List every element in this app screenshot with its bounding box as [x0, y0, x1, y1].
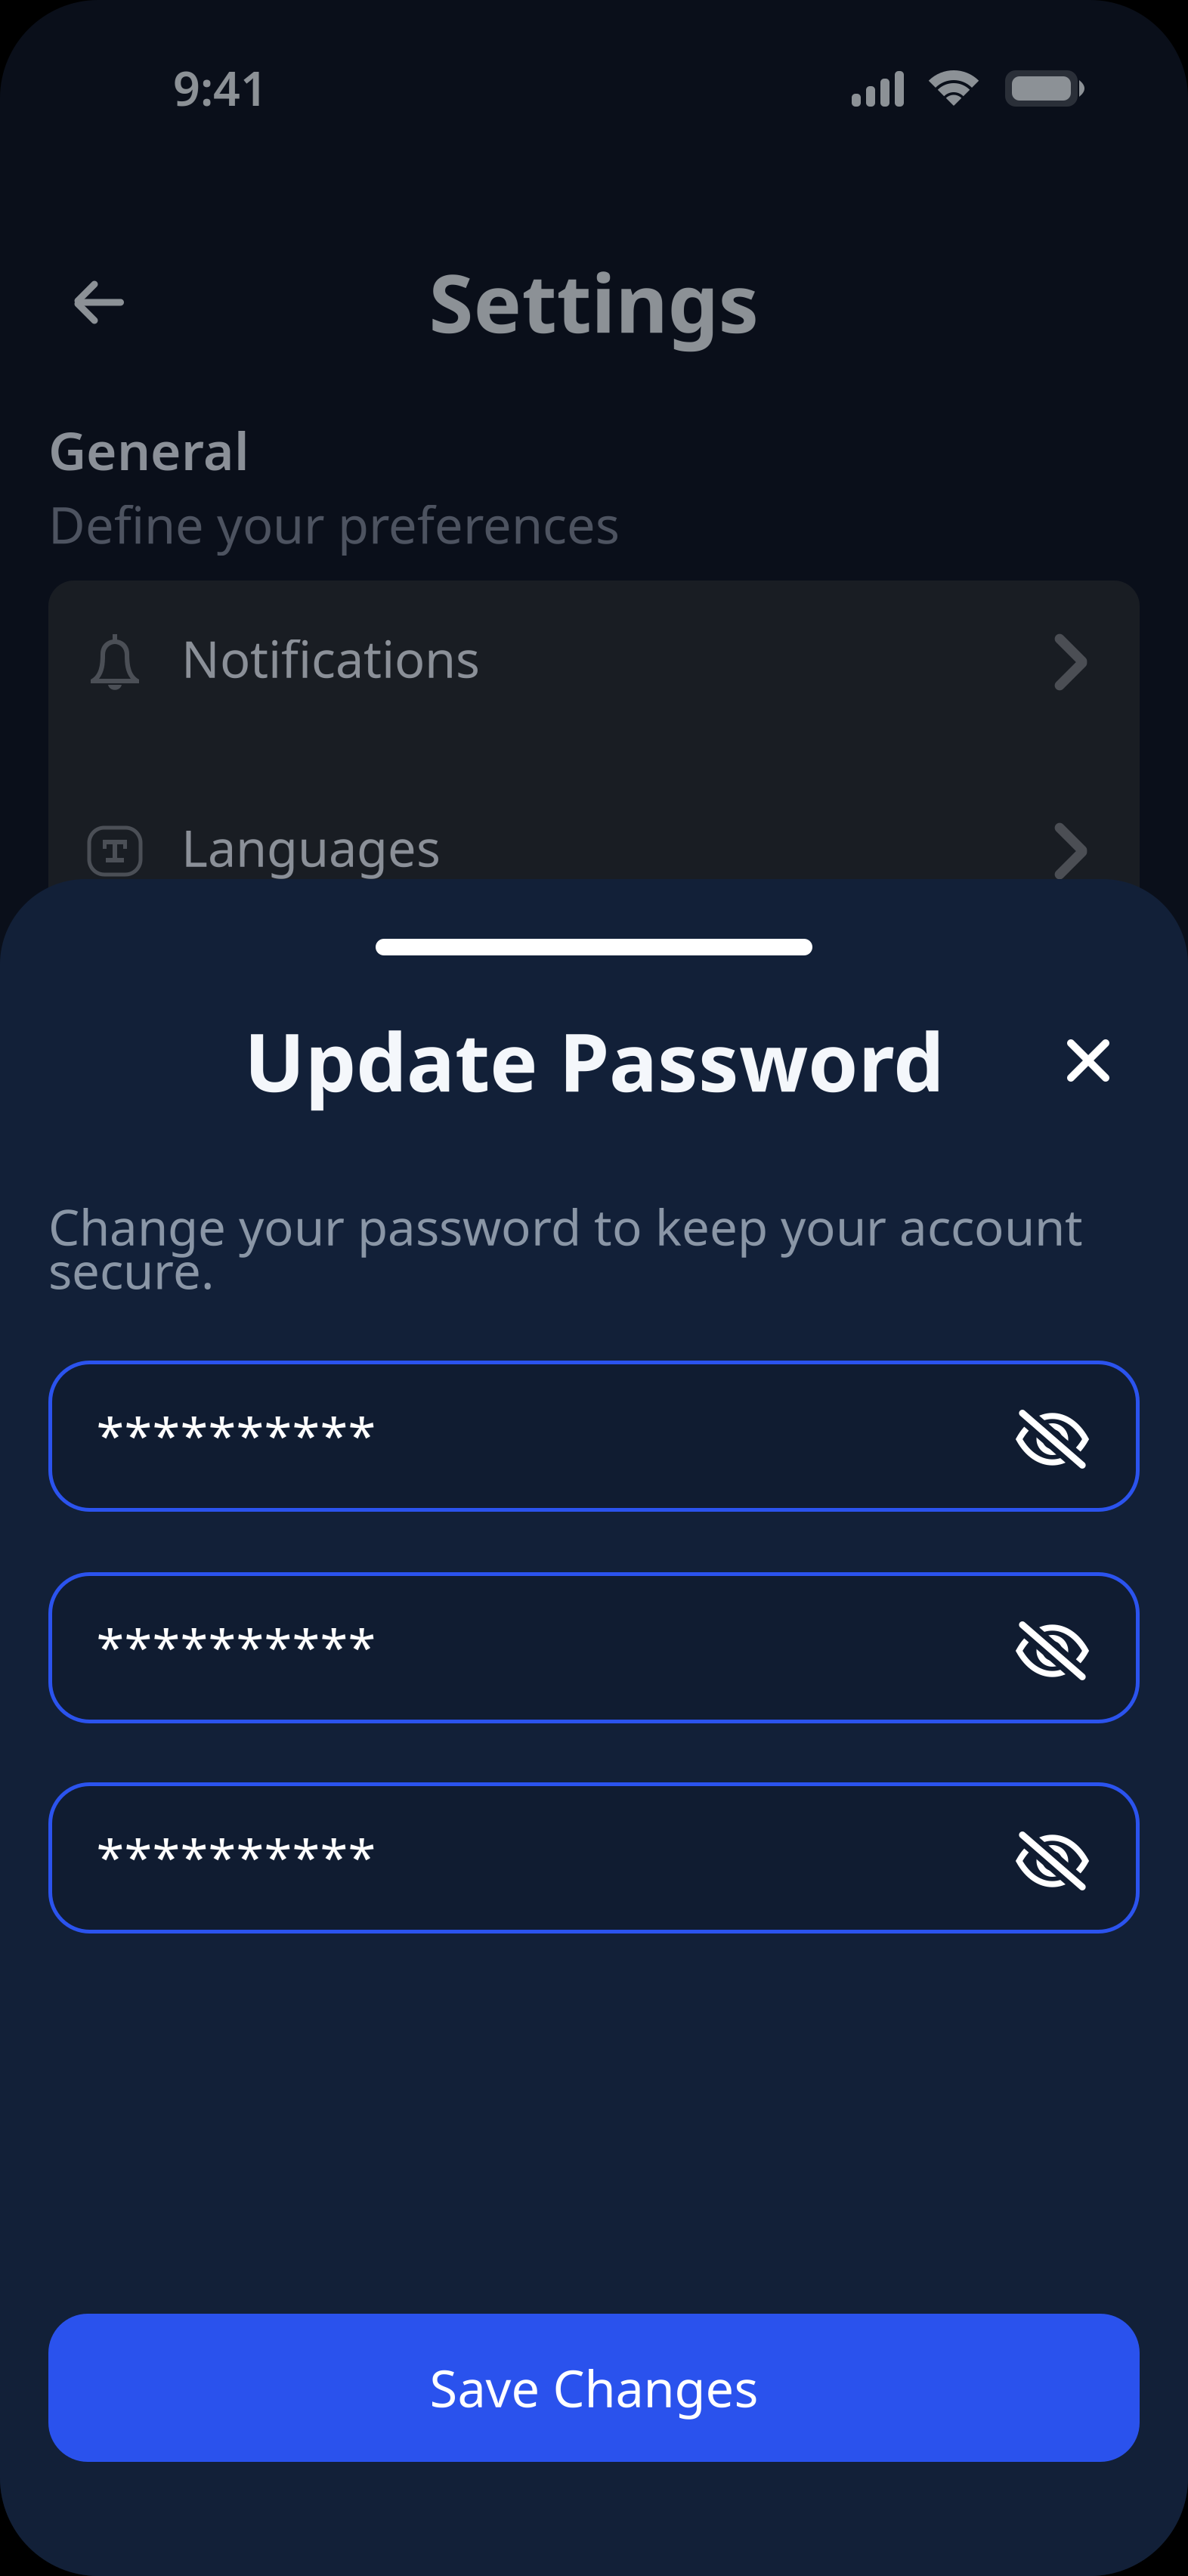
button[interactable]: Languages	[48, 757, 1140, 946]
staticText: Languages	[181, 814, 441, 881]
staticText: 9:41	[173, 56, 268, 119]
button[interactable]: Show password	[1015, 1401, 1090, 1477]
staticText: General	[48, 415, 249, 485]
staticText: Save Changes	[430, 2354, 758, 2421]
staticText: **********	[96, 1402, 376, 1469]
button[interactable]: Back	[54, 257, 145, 348]
button[interactable]: Close	[1043, 1015, 1134, 1106]
staticText: **********	[96, 1824, 376, 1891]
staticText: **********	[96, 1614, 376, 1680]
staticText: Change your password to keep your accoun…	[48, 1194, 1083, 1303]
staticText: Settings	[429, 248, 759, 355]
button[interactable]: Show password	[1015, 1613, 1090, 1689]
staticText: Notifications	[181, 625, 480, 692]
button[interactable]: Show password	[1015, 1823, 1090, 1899]
button[interactable]: Save Changes	[48, 2314, 1140, 2462]
button[interactable]: Appearance	[48, 946, 1140, 1135]
staticText: Update Password	[244, 1007, 944, 1114]
staticText: Appearance	[181, 1003, 464, 1070]
staticText: Define your preferences	[48, 491, 620, 558]
button[interactable]: Notifications	[48, 568, 1140, 757]
